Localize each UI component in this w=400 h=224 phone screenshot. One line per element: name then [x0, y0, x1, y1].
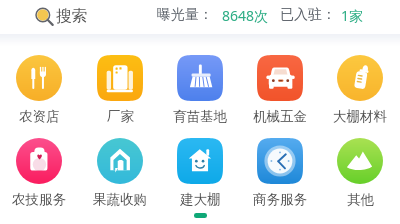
staticText: 大棚材料: [333, 108, 387, 125]
staticText: 果蔬收购: [93, 191, 147, 208]
button[interactable]: 机械五金: [240, 55, 320, 125]
button[interactable]: 商务服务: [240, 138, 320, 208]
staticText: 曝光量：: [157, 6, 213, 24]
other: Search: [35, 7, 52, 24]
staticText: 厂家: [107, 108, 134, 125]
button[interactable]: 厂家: [80, 55, 160, 125]
staticText: 搜索: [56, 6, 87, 26]
staticText: 8648次: [222, 6, 269, 25]
staticText: 育苗基地: [173, 108, 227, 125]
staticText: 机械五金: [253, 108, 307, 125]
button[interactable]: 农技服务: [0, 138, 79, 208]
button[interactable]: 大棚材料: [320, 55, 400, 125]
staticText: 其他: [347, 191, 374, 208]
button[interactable]: 育苗基地: [160, 55, 240, 125]
button[interactable]: Search: [35, 3, 87, 28]
staticText: 已入驻：: [280, 6, 336, 24]
staticText: 建大棚: [180, 191, 221, 208]
staticText: 商务服务: [253, 191, 307, 208]
staticText: 农资店: [19, 108, 60, 125]
staticText: 1家: [341, 6, 364, 25]
button[interactable]: 建大棚: [160, 138, 240, 208]
staticText: 农技服务: [12, 191, 66, 208]
button[interactable]: 农资店: [0, 55, 79, 125]
button[interactable]: 其他: [320, 138, 400, 208]
button[interactable]: 果蔬收购: [80, 138, 160, 208]
